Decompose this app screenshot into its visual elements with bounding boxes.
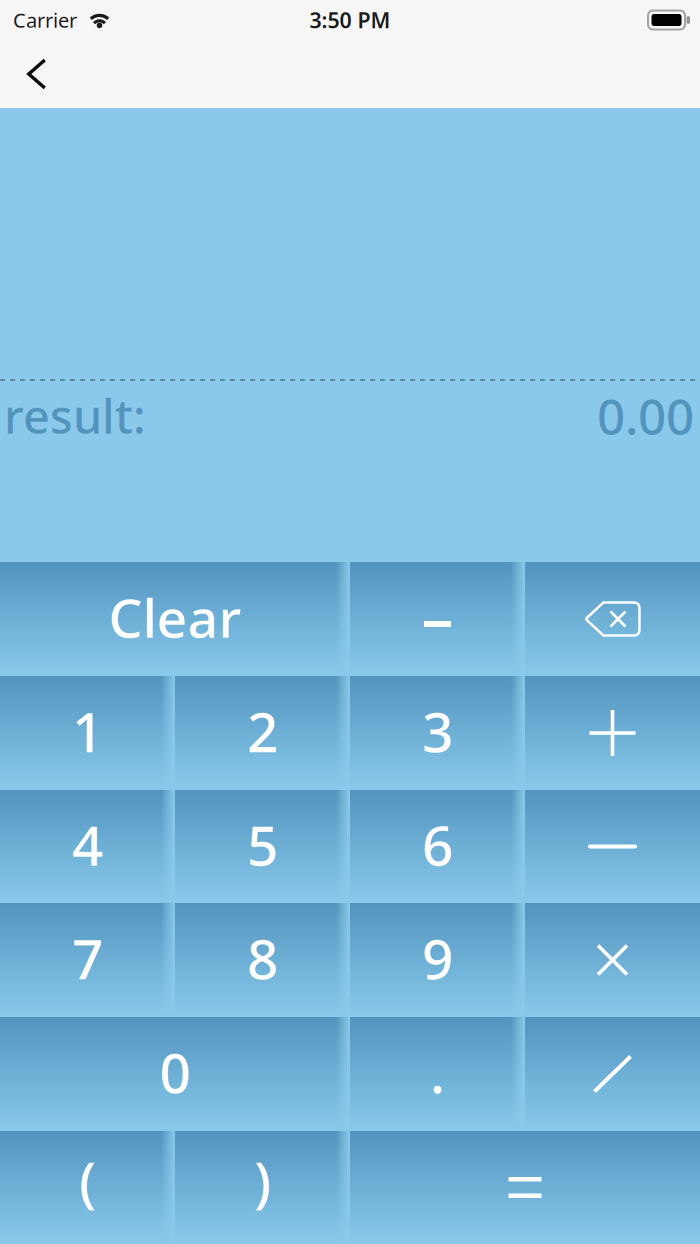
button[interactable]: Subtract [525, 790, 700, 903]
staticText: 5 [247, 808, 278, 881]
button[interactable]: 8 [175, 903, 350, 1017]
staticText: Clear [108, 582, 241, 652]
button[interactable]: Multiply [525, 903, 700, 1017]
button[interactable]: 9 [350, 903, 525, 1017]
button[interactable]: ( [0, 1131, 175, 1244]
staticText: 4 [72, 808, 103, 881]
staticText: Carrier [13, 7, 77, 33]
button[interactable]: Equals [350, 1131, 700, 1244]
staticText: . [430, 1036, 445, 1108]
button[interactable]: Clear [0, 562, 350, 676]
button[interactable]: Back [15, 52, 59, 96]
staticText: result: [4, 385, 146, 447]
staticText: ( [79, 1144, 96, 1217]
button[interactable]: Divide [525, 1017, 700, 1131]
button[interactable]: 5 [175, 790, 350, 903]
button[interactable]: Delete [525, 562, 700, 676]
button[interactable]: Add [525, 676, 700, 790]
staticText: ) [254, 1144, 271, 1217]
button[interactable]: ) [175, 1131, 350, 1244]
staticText: 7 [72, 922, 103, 994]
staticText: 8 [247, 922, 278, 994]
staticText: 1 [72, 695, 103, 767]
button[interactable]: . [350, 1017, 525, 1131]
button[interactable]: 1 [0, 676, 175, 790]
staticText: 6 [422, 808, 453, 881]
staticText: 3:50 PM [309, 6, 390, 34]
button[interactable]: Plus or minus [350, 562, 525, 676]
button[interactable]: 3 [350, 676, 525, 790]
staticText: 9 [422, 922, 453, 994]
staticText: 0.00 [597, 383, 694, 448]
button[interactable]: 4 [0, 790, 175, 903]
button[interactable]: 6 [350, 790, 525, 903]
staticText: 2 [247, 695, 278, 767]
button[interactable]: 0 [0, 1017, 350, 1131]
button[interactable]: 7 [0, 903, 175, 1017]
button[interactable]: 2 [175, 676, 350, 790]
staticText: 3 [422, 695, 453, 767]
staticText: 0 [159, 1036, 190, 1108]
